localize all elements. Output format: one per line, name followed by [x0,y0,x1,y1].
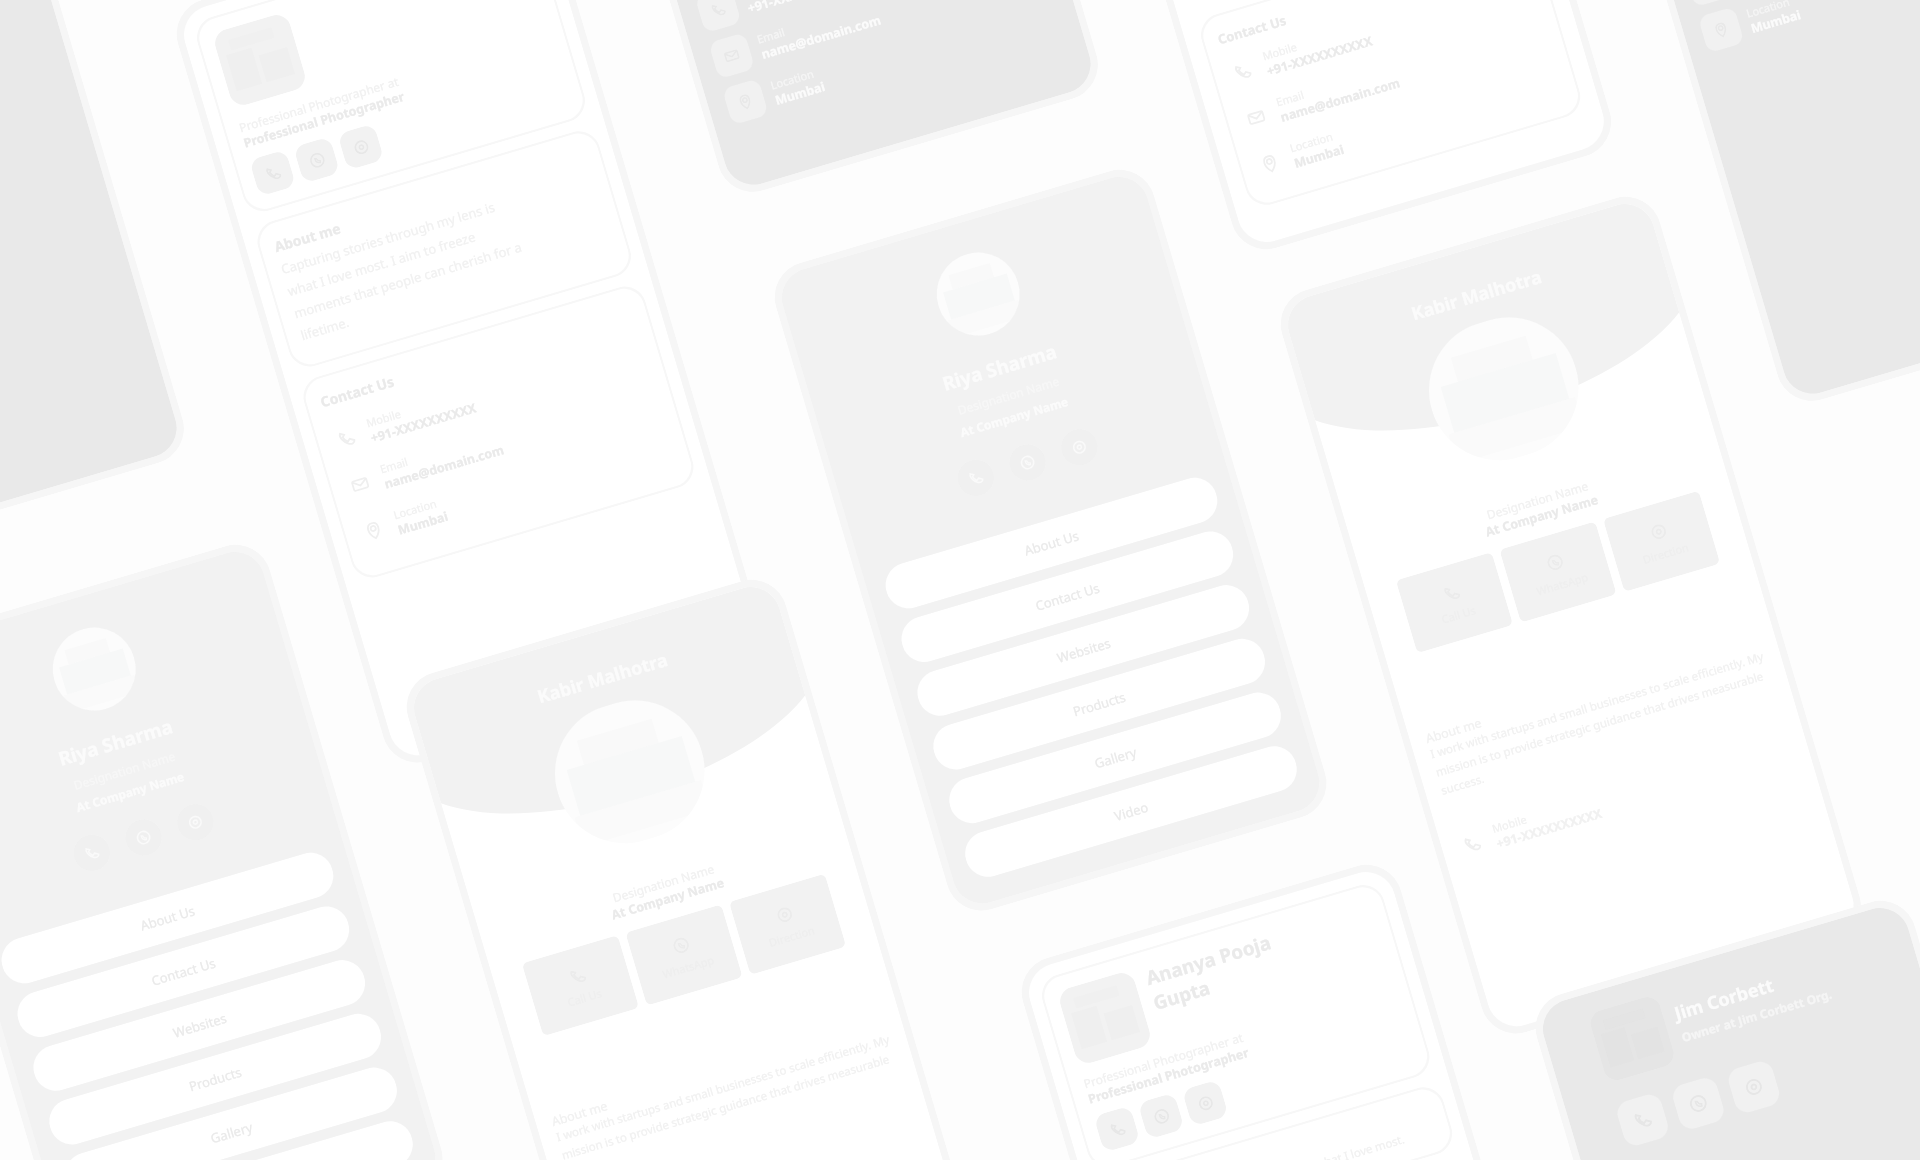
staticText: Professional Photographer [1086,1044,1251,1108]
button[interactable]: Share [1182,1079,1229,1126]
button[interactable]: WhatsApp [625,904,743,1006]
staticText: Location [1744,0,1792,21]
staticText: Owner at Jim Corbett Org. [1680,985,1834,1045]
button[interactable]: Share [337,123,384,170]
button[interactable]: WhatsApp [1670,1075,1727,1132]
staticText: name@domain.com [759,11,883,63]
button[interactable]: Websites [28,954,371,1096]
staticText: Contact Us [1033,578,1103,615]
staticText: Contact Us [149,953,219,990]
staticText: Location [392,495,439,522]
button[interactable]: Email [339,373,664,511]
staticText: Capturing stories through my lens is wha… [1122,1131,1407,1160]
button[interactable]: Mobile [1222,0,1538,98]
button[interactable]: About me [1099,1084,1455,1160]
button[interactable]: Products [44,1008,387,1150]
staticText: Jim Corbett [1671,973,1777,1026]
staticText: Professional Photographer [242,88,407,151]
staticText: Mumbai [396,508,451,539]
button[interactable]: Mobile [693,0,1037,38]
button[interactable]: About me [255,128,634,369]
button[interactable]: Email [1235,8,1552,144]
staticText: At Company Name [1483,491,1600,540]
staticText: Designation Name [1485,477,1590,522]
staticText: Gallery [208,1118,255,1147]
staticText: Websites [1055,634,1113,667]
button[interactable]: Location [1249,54,1566,190]
staticText: Kabir Malhotra [1408,264,1545,326]
button[interactable]: Call [1093,1105,1141,1153]
staticText: Gallery [1092,743,1139,772]
button[interactable]: WhatsApp [1137,1092,1185,1140]
button[interactable]: Professional Photographer at [194,0,588,214]
button[interactable]: Email [707,0,1050,84]
button[interactable]: Call [249,149,296,197]
staticText: About me [550,1097,610,1130]
button[interactable]: Direction [1603,491,1720,592]
button[interactable]: WhatsApp [293,136,340,183]
staticText: Email [755,24,787,47]
staticText: name@domain.com [382,441,506,493]
button[interactable]: Contact Us [301,284,696,580]
staticText: Ananya Pooja Gupta [1143,923,1301,1016]
button[interactable]: Share [1725,1058,1782,1116]
staticText: Designation Name [611,860,716,905]
button[interactable]: Gallery [944,687,1286,829]
button[interactable]: Call Us [522,935,639,1036]
staticText: About Us [138,901,198,935]
staticText: At Company Name [609,874,726,923]
staticText: Products [1071,687,1128,720]
button[interactable]: Call [1614,1091,1671,1148]
button[interactable]: Video [959,741,1302,882]
staticText: Location [769,65,816,93]
button[interactable]: Mobile [326,327,650,465]
staticText: Location [1288,128,1335,155]
button[interactable]: WhatsApp [1499,521,1617,623]
button[interactable]: Contact Us [12,901,355,1043]
staticText: Video [1112,798,1151,825]
button[interactable]: About Us [0,847,339,989]
staticText: Mobile [1490,811,1529,836]
button[interactable]: Contact Us [1198,0,1583,208]
button[interactable]: About Us [880,472,1223,614]
button[interactable]: Products [928,633,1271,775]
staticText: Mobile [741,0,780,1]
button[interactable]: Direction [729,874,846,975]
button[interactable]: Ananya Pooja Gupta [1039,882,1432,1160]
button[interactable]: Location [353,419,677,557]
staticText: Professional Photographer at [237,73,401,135]
button[interactable]: Location [1696,0,1920,58]
button[interactable]: Location [720,0,1064,130]
button[interactable]: Websites [912,579,1255,721]
button[interactable]: Call Us [1396,552,1513,653]
staticText: Kabir Malhotra [534,647,671,709]
button[interactable]: Video [75,1116,418,1160]
staticText: About me [1424,714,1484,747]
button[interactable]: Gallery [60,1062,402,1160]
button[interactable]: Contact Us [896,526,1239,668]
